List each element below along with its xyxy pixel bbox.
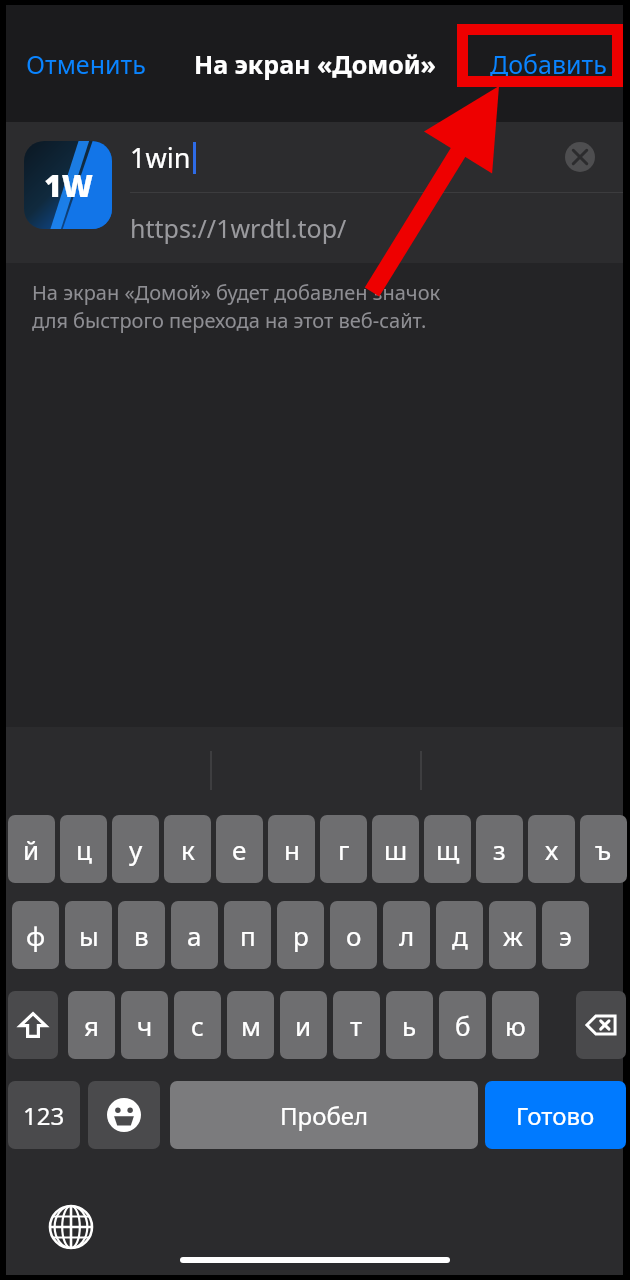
button[interactable]: Shift xyxy=(8,991,58,1059)
staticText: ы xyxy=(79,918,99,953)
button[interactable]: х xyxy=(528,815,575,883)
button[interactable]: в xyxy=(118,901,165,969)
staticText: б xyxy=(455,1008,471,1043)
staticText: г xyxy=(338,832,350,867)
button[interactable]: о xyxy=(330,901,377,969)
staticText: д xyxy=(452,918,468,953)
button[interactable]: э xyxy=(542,901,589,969)
staticText: ж xyxy=(503,918,523,953)
button[interactable]: у xyxy=(112,815,159,883)
button[interactable]: Очистить xyxy=(559,136,601,178)
button[interactable]: ж xyxy=(489,901,536,969)
staticText: Готово xyxy=(516,1099,595,1132)
button[interactable]: ь xyxy=(386,991,433,1059)
staticText: к xyxy=(181,832,195,867)
staticText: м xyxy=(241,1008,261,1043)
staticText: э xyxy=(559,918,572,953)
button[interactable]: Сменить язык xyxy=(46,1202,96,1252)
button[interactable]: ц xyxy=(60,815,107,883)
button[interactable]: с xyxy=(174,991,221,1059)
staticText: Добавить xyxy=(490,47,607,81)
staticText: т xyxy=(350,1008,363,1043)
staticText: 1win xyxy=(130,139,191,176)
staticText: На экран «Домой» будет добавлен значок д… xyxy=(32,279,441,334)
button[interactable]: ы xyxy=(65,901,112,969)
button[interactable]: ш xyxy=(372,815,419,883)
button[interactable]: з xyxy=(476,815,523,883)
button[interactable]: м xyxy=(227,991,274,1059)
staticText: щ xyxy=(436,832,460,867)
button[interactable]: ч xyxy=(121,991,168,1059)
button[interactable]: а xyxy=(171,901,218,969)
staticText: р xyxy=(293,918,309,953)
staticText: з xyxy=(493,832,506,867)
button[interactable]: к xyxy=(164,815,211,883)
staticText: https://1wrdtl.top/ xyxy=(130,211,347,245)
staticText: х xyxy=(545,832,559,867)
staticText: и xyxy=(295,1008,312,1043)
button[interactable]: л xyxy=(383,901,430,969)
staticText: о xyxy=(346,918,362,953)
button[interactable]: ъ xyxy=(580,815,627,883)
button[interactable]: р xyxy=(277,901,324,969)
button[interactable]: п xyxy=(224,901,271,969)
staticText: л xyxy=(399,918,415,953)
button[interactable]: е xyxy=(216,815,263,883)
staticText: у xyxy=(129,832,143,867)
staticText: а xyxy=(187,918,202,953)
button[interactable]: й xyxy=(8,815,55,883)
staticText: п xyxy=(240,918,256,953)
button[interactable]: б xyxy=(439,991,486,1059)
button[interactable]: н xyxy=(268,815,315,883)
staticText: я xyxy=(84,1008,100,1043)
staticText: На экран «Домой» xyxy=(194,47,436,81)
button[interactable]: я xyxy=(68,991,115,1059)
staticText: 123 xyxy=(23,1099,65,1132)
button[interactable]: Удалить xyxy=(576,991,626,1059)
staticText: 1W xyxy=(44,165,93,206)
button[interactable]: 123 xyxy=(8,1081,80,1149)
button[interactable]: Готово xyxy=(485,1081,626,1149)
staticText: ч xyxy=(137,1008,153,1043)
button[interactable]: д xyxy=(436,901,483,969)
button[interactable]: щ xyxy=(424,815,471,883)
staticText: ш xyxy=(384,832,408,867)
staticText: Отменить xyxy=(26,47,146,81)
staticText: ф xyxy=(26,918,46,953)
staticText: ъ xyxy=(595,832,612,867)
button[interactable]: г xyxy=(320,815,367,883)
button[interactable]: Добавить xyxy=(484,39,613,89)
staticText: е xyxy=(232,832,247,867)
button[interactable]: т xyxy=(333,991,380,1059)
staticText: ю xyxy=(505,1008,526,1043)
staticText: в xyxy=(134,918,149,953)
button[interactable]: Пробел xyxy=(170,1081,478,1149)
staticText: Пробел xyxy=(280,1099,369,1132)
staticText: с xyxy=(191,1008,204,1043)
staticText: й xyxy=(23,832,40,867)
button[interactable]: ю xyxy=(492,991,539,1059)
button[interactable]: и xyxy=(280,991,327,1059)
button[interactable]: Отменить xyxy=(20,39,152,89)
button[interactable]: ф xyxy=(12,901,59,969)
button[interactable]: Эмодзи xyxy=(88,1081,160,1149)
staticText: ь xyxy=(402,1008,417,1043)
staticText: ц xyxy=(76,832,92,867)
staticText: н xyxy=(284,832,300,867)
